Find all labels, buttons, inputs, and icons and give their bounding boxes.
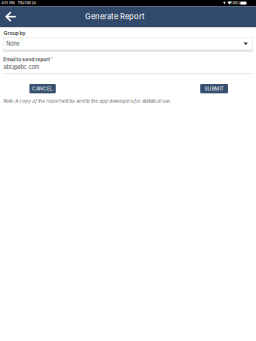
staticText: 100% bbox=[231, 1, 241, 5]
staticText: Email to send report bbox=[3, 56, 50, 62]
staticText: Thu Feb 24 bbox=[17, 1, 35, 5]
staticText: None bbox=[6, 40, 19, 47]
staticText: SUBMIT bbox=[205, 86, 224, 92]
staticText: 4:51 PM bbox=[1, 1, 14, 5]
staticText: * bbox=[51, 56, 53, 62]
staticText: abc@abc.com bbox=[3, 63, 39, 70]
staticText: Group by bbox=[3, 30, 25, 36]
staticText: Note: A copy of the report will be sent … bbox=[3, 98, 171, 104]
button[interactable]: CANCEL bbox=[29, 84, 56, 93]
button[interactable]: None bbox=[3, 38, 252, 50]
staticText: CANCEL bbox=[32, 86, 53, 92]
staticText: Generate Report bbox=[85, 12, 145, 21]
button[interactable]: SUBMIT bbox=[200, 84, 228, 93]
button[interactable]: Back bbox=[0, 6, 21, 27]
